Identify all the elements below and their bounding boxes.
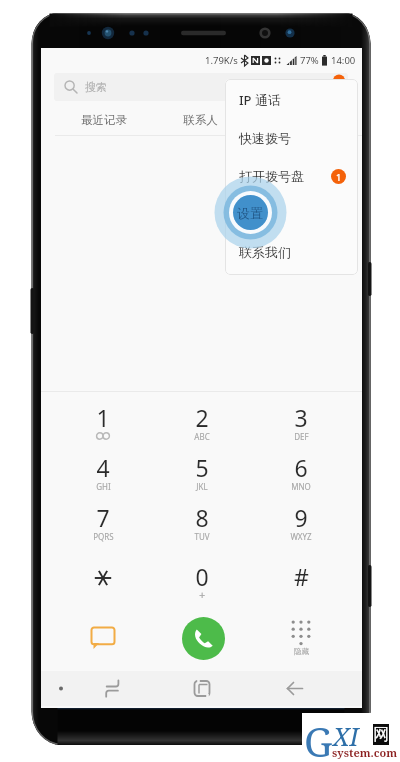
staticText: 6 [294, 452, 308, 483]
staticText: 设置 [239, 204, 265, 220]
button[interactable]: Call [176, 611, 230, 665]
staticText: 77% [300, 54, 319, 67]
button[interactable]: 9 [255, 502, 347, 550]
button[interactable]: 收藏 [262, 104, 334, 135]
staticText: 联系人 [183, 113, 218, 127]
button[interactable]: 联系我们 [225, 234, 358, 270]
staticText: # [294, 561, 309, 592]
staticText: 1 [336, 171, 342, 183]
staticText: GHI [96, 481, 111, 492]
staticText: 8 [195, 502, 209, 533]
staticText: 联系我们 [239, 244, 291, 260]
staticText: 快速拨号 [239, 130, 291, 146]
staticText: PQRS [93, 531, 114, 542]
staticText: 2 [195, 402, 209, 433]
button[interactable]: 6 [255, 452, 347, 500]
button[interactable]: 最近记录 [68, 104, 140, 135]
staticText: XI [333, 719, 359, 753]
staticText: G [304, 714, 333, 762]
button[interactable]: 快速拨号 [225, 120, 358, 156]
button[interactable]: Back [273, 671, 317, 706]
staticText: MNO [291, 481, 311, 492]
button[interactable]: 打开拨号盘 [225, 158, 358, 194]
button[interactable]: Home [180, 671, 224, 706]
staticText: 14:00 [331, 54, 356, 67]
button[interactable]: 4 [57, 452, 149, 500]
staticText: TUV [194, 531, 210, 542]
button[interactable]: Hide keypad [275, 614, 327, 660]
button[interactable]: 联系人 [164, 104, 236, 135]
button[interactable]: Send message [79, 614, 127, 662]
staticText: 隐藏 [294, 647, 309, 656]
staticText: JKL [196, 481, 208, 492]
staticText: 1 [96, 402, 110, 433]
staticText: 4 [96, 452, 110, 483]
staticText: 0 [195, 561, 209, 592]
staticText: 1.79K/s [205, 54, 238, 67]
staticText: 7 [96, 502, 110, 533]
button[interactable]: 设置 [225, 194, 358, 230]
staticText: 3 [294, 402, 308, 433]
button[interactable]: 7 [57, 502, 149, 550]
button[interactable]: IP 通话 [225, 82, 358, 118]
button[interactable] [57, 561, 149, 609]
staticText: 搜索 [85, 80, 107, 94]
button[interactable]: Recent apps [90, 671, 134, 706]
button[interactable]: 2 [156, 402, 248, 450]
staticText: ABC [194, 431, 210, 442]
button[interactable]: 0 [156, 561, 248, 609]
staticText: 设置 [237, 205, 263, 221]
staticText: IP 通话 [239, 91, 281, 109]
staticText: system.com [332, 745, 398, 760]
button[interactable]: 5 [156, 452, 248, 500]
button[interactable]: 1 [57, 402, 149, 450]
staticText: 5 [195, 452, 209, 483]
staticText: 网 [373, 725, 389, 745]
staticText: + [199, 587, 206, 602]
staticText: 最近记录 [81, 113, 127, 127]
staticText: 打开拨号盘 [239, 168, 304, 184]
button[interactable]: 搜索 [54, 73, 348, 101]
staticText: 9 [294, 502, 308, 533]
button[interactable]: 8 [156, 502, 248, 550]
button[interactable]: 3 [255, 402, 347, 450]
other: Call [182, 617, 225, 660]
staticText: DEF [294, 431, 309, 442]
staticText: WXYZ [290, 531, 312, 542]
button[interactable]: # [255, 561, 347, 609]
